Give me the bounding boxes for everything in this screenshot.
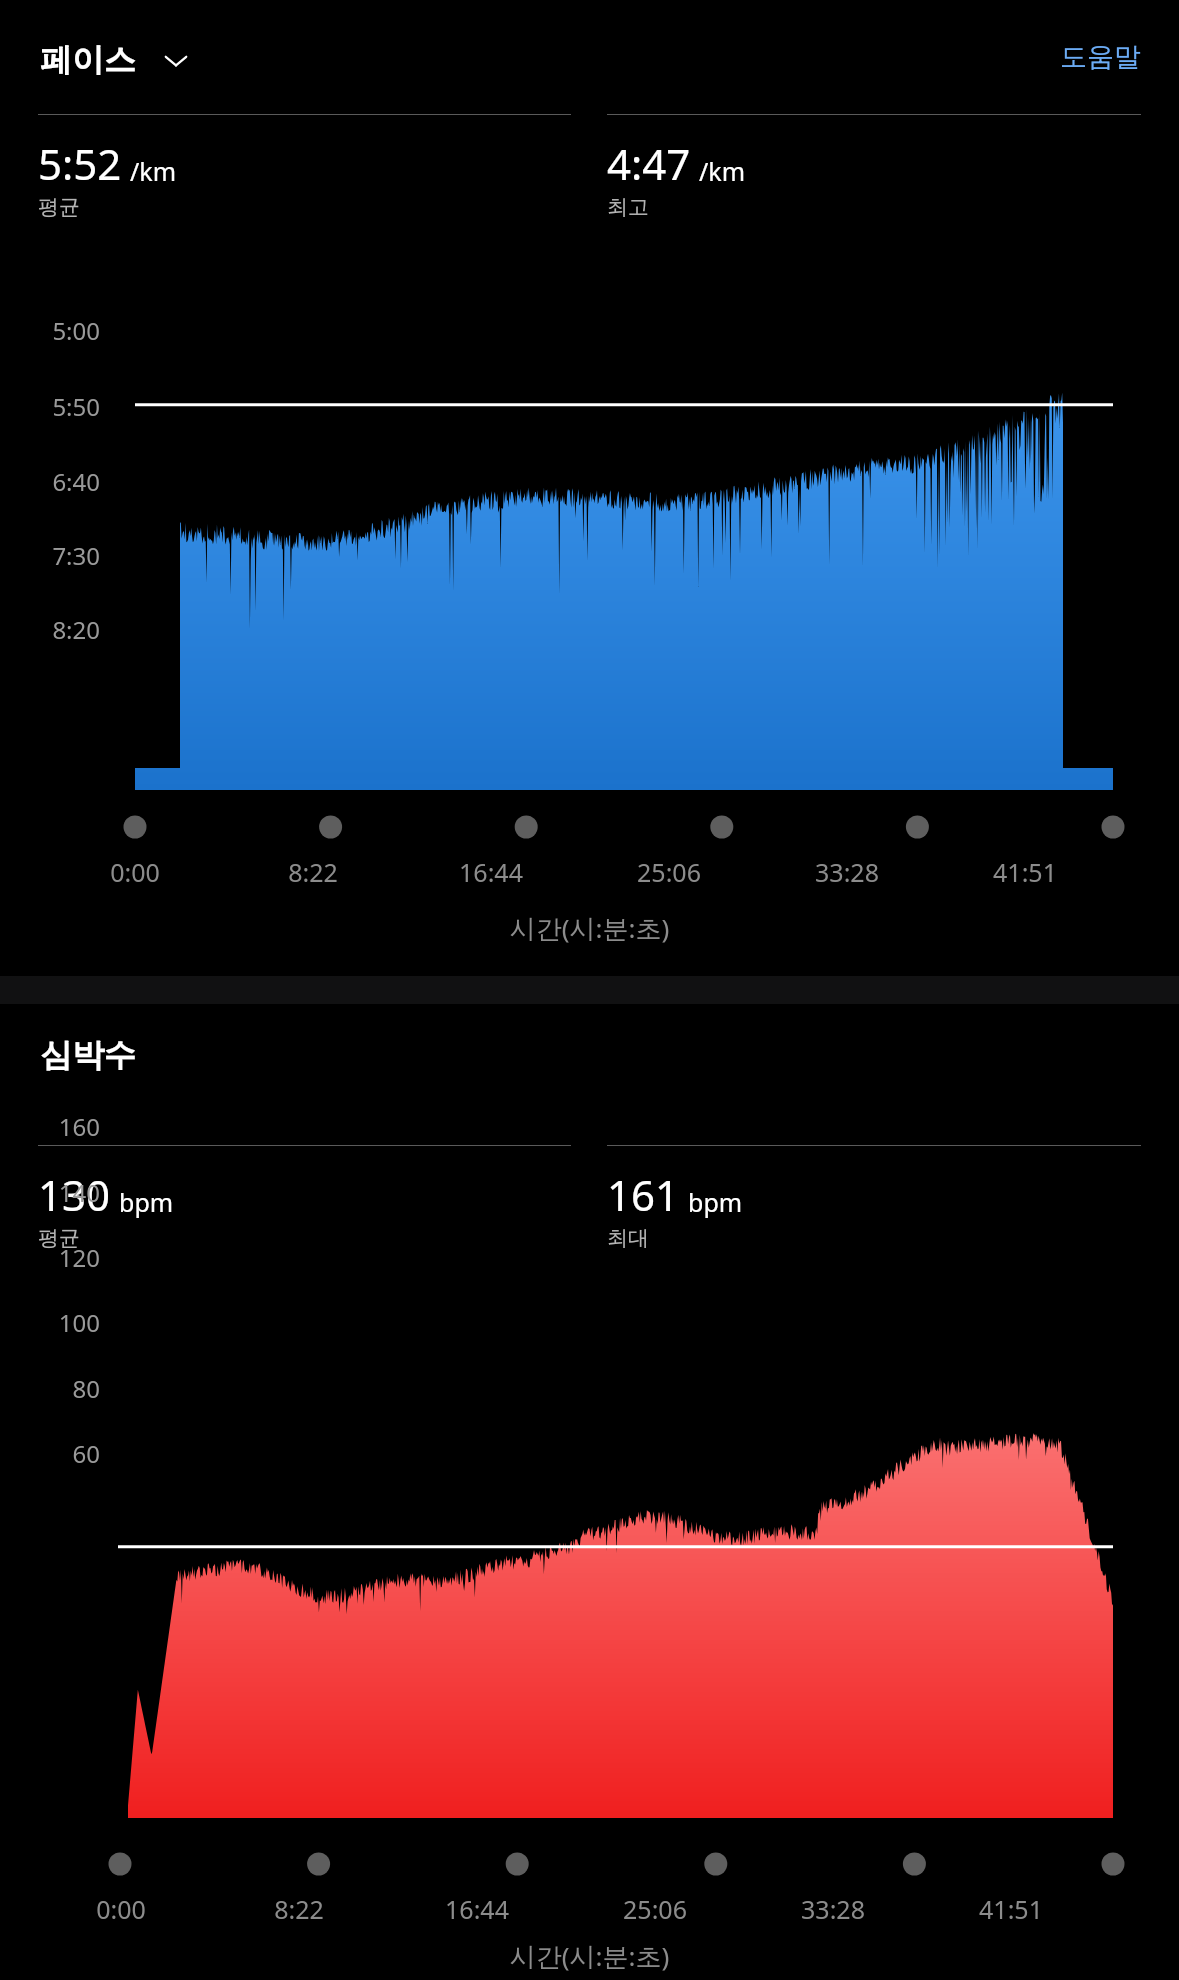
staticText: 심박수: [40, 1035, 136, 1075]
staticText: 8:20: [0, 613, 100, 646]
staticText: 0:00: [32, 1892, 210, 1926]
staticText: 25:06: [566, 1892, 744, 1926]
staticText: 130: [38, 1166, 111, 1223]
staticText: 16:44: [388, 1892, 566, 1926]
staticText: 80: [0, 1372, 100, 1405]
staticText: 41:51: [922, 1892, 1100, 1926]
staticText: 5:00: [0, 314, 100, 347]
staticText: bpm: [119, 1185, 174, 1219]
staticText: 평균: [38, 194, 80, 220]
staticText: bpm: [688, 1185, 743, 1219]
staticText: 161: [607, 1166, 680, 1223]
staticText: 최고: [607, 194, 649, 220]
staticText: 6:40: [0, 465, 100, 498]
button[interactable]: 페이스: [30, 22, 202, 98]
staticText: 100: [0, 1306, 100, 1339]
staticText: 160: [0, 1110, 100, 1143]
staticText: 0:00: [46, 855, 224, 889]
staticText: 시간(시:분:초): [0, 1938, 1179, 1974]
button[interactable]: 도움말: [1048, 28, 1153, 86]
staticText: 페이스: [40, 40, 136, 80]
staticText: 평균: [38, 1225, 80, 1251]
staticText: 최대: [607, 1225, 649, 1251]
staticText: 8:22: [210, 1892, 388, 1926]
staticText: 120: [0, 1241, 100, 1274]
staticText: 33:28: [758, 855, 936, 889]
staticText: 7:30: [0, 539, 100, 572]
other: Change metric: [160, 44, 192, 76]
staticText: /km: [699, 154, 746, 188]
staticText: 16:44: [402, 855, 580, 889]
staticText: 140: [0, 1176, 100, 1209]
staticText: /km: [130, 154, 177, 188]
staticText: 33:28: [744, 1892, 922, 1926]
staticText: 8:22: [224, 855, 402, 889]
staticText: 도움말: [1060, 40, 1141, 74]
staticText: 시간(시:분:초): [0, 910, 1179, 946]
staticText: 4:47: [607, 135, 691, 192]
staticText: 5:52: [38, 135, 122, 192]
staticText: 60: [0, 1437, 100, 1470]
staticText: 25:06: [580, 855, 758, 889]
staticText: 5:50: [0, 390, 100, 423]
staticText: 41:51: [936, 855, 1114, 889]
